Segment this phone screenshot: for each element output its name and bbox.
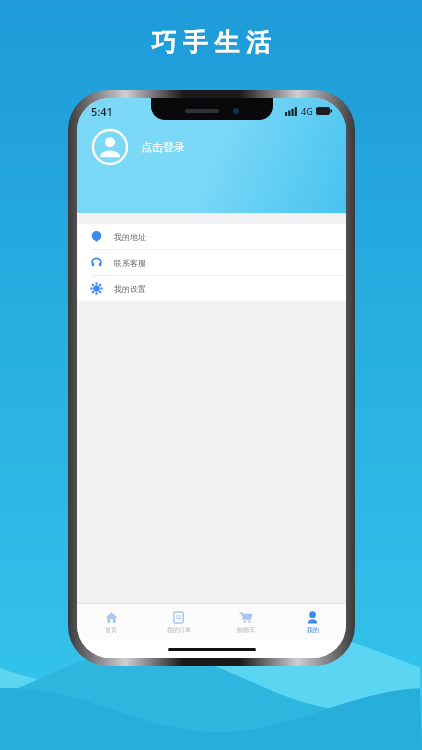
staticText: 我的订单 — [167, 626, 191, 634]
staticText: 联系客服 — [114, 258, 146, 268]
button[interactable]: 首页 — [77, 604, 145, 640]
staticText: 4G — [301, 105, 313, 117]
button[interactable]: 购物车 — [212, 604, 279, 640]
button[interactable]: 我的 — [279, 604, 346, 640]
button[interactable]: 我的地址 — [77, 224, 346, 249]
button[interactable]: 点击登录 — [93, 130, 185, 164]
staticText: 我的设置 — [114, 284, 146, 294]
staticText: 点击登录 — [141, 140, 185, 154]
staticText: 我的地址 — [114, 232, 146, 242]
staticText: 我的 — [307, 626, 319, 634]
staticText: 巧 手 生 活 — [0, 24, 422, 58]
staticText: 购物车 — [237, 626, 255, 634]
button[interactable]: 我的设置 — [77, 276, 346, 301]
button[interactable]: 我的订单 — [145, 604, 212, 640]
staticText: 5:41 — [91, 104, 113, 119]
button[interactable]: 联系客服 — [77, 250, 346, 275]
staticText: 首页 — [105, 626, 117, 634]
